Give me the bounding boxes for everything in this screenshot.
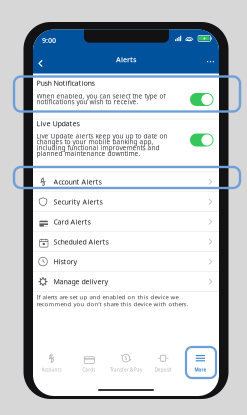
staticText: When enabled, you can select the type of xyxy=(36,92,165,100)
staticText: Live Update alerts keep you up to date o… xyxy=(36,132,167,140)
staticText: History xyxy=(53,257,77,266)
staticText: More xyxy=(194,367,206,373)
staticText: including functional improvements and xyxy=(36,143,159,152)
button[interactable]: Account Alerts xyxy=(33,172,219,191)
button[interactable]: Manage delivery xyxy=(33,272,219,291)
button[interactable]: Security Alerts xyxy=(33,192,219,211)
staticText: planned maintenance downtime. xyxy=(36,149,140,158)
button[interactable]: Live updates xyxy=(190,133,213,146)
staticText: Push Notifications xyxy=(36,78,94,88)
button[interactable]: More options xyxy=(199,55,219,68)
staticText: Deposit xyxy=(155,367,172,373)
button[interactable]: Accounts xyxy=(33,353,70,377)
button[interactable]: Cards xyxy=(70,353,107,377)
button[interactable]: Card Alerts xyxy=(33,212,219,231)
staticText: 9:00 xyxy=(42,35,56,45)
staticText: Alerts xyxy=(116,55,136,64)
staticText: Accounts xyxy=(42,367,62,373)
button[interactable]: Back xyxy=(33,55,51,72)
button[interactable]: Push notifications xyxy=(190,93,213,106)
staticText: $ xyxy=(124,355,127,362)
staticText: Security Alerts xyxy=(53,197,102,206)
staticText: recommend you don’t share this device wi… xyxy=(36,300,188,308)
staticText: Account Alerts xyxy=(53,177,101,187)
staticText: Scheduled Alerts xyxy=(53,237,108,246)
staticText: Cards xyxy=(82,367,95,373)
button[interactable]: $ xyxy=(107,353,145,377)
button[interactable]: Deposit xyxy=(145,353,182,377)
staticText: Transfer & Pay xyxy=(110,367,142,373)
button[interactable]: Scheduled Alerts xyxy=(33,232,219,251)
staticText: notifications you wish to receive. xyxy=(36,97,138,106)
staticText: Card Alerts xyxy=(53,217,90,226)
button[interactable]: More xyxy=(182,353,219,377)
staticText: Manage delivery xyxy=(53,277,108,286)
staticText: Live Updates xyxy=(36,119,79,128)
button[interactable]: History xyxy=(33,252,219,271)
staticText: changes to your mobile banking app, xyxy=(36,137,153,146)
staticText: If alerts are set up and enabled on this… xyxy=(36,293,178,301)
